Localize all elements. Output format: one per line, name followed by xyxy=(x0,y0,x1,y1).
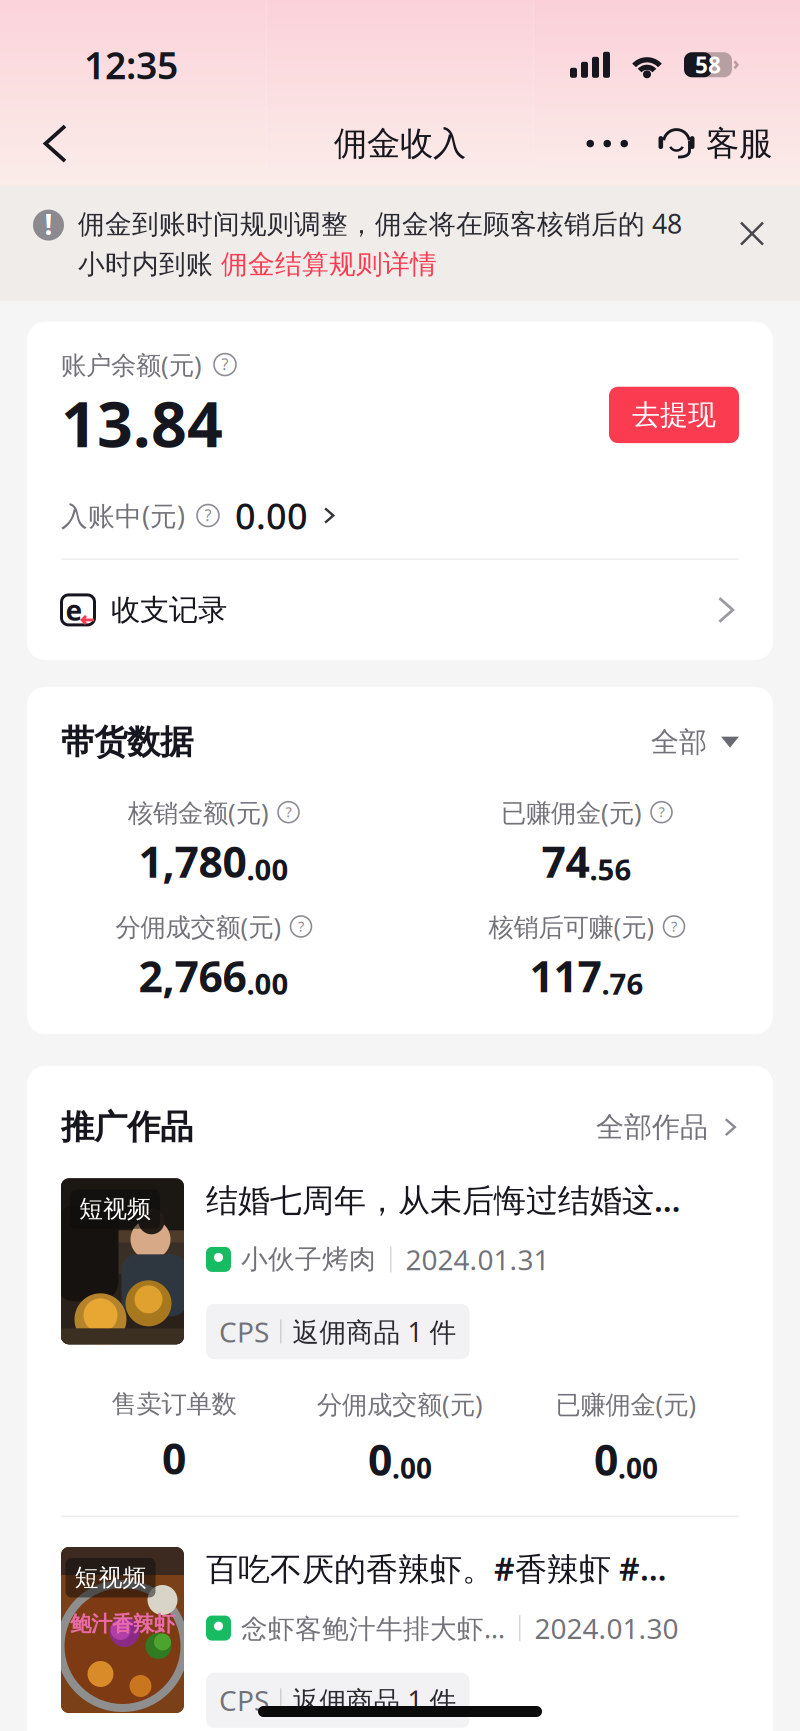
button[interactable]: 入账中(元) xyxy=(61,487,337,544)
staticText: 小伙子烤肉 xyxy=(241,1243,376,1276)
staticText: .76 xyxy=(601,964,643,1003)
staticText: ? xyxy=(671,916,677,936)
staticText: 分佣成交额(元) xyxy=(115,910,281,943)
staticText: ? xyxy=(298,916,304,936)
staticText: 1,780 xyxy=(138,833,246,890)
staticText: 百吃不厌的香辣虾。#香辣虾 #… xyxy=(206,1547,667,1589)
staticText: 佣金收入 xyxy=(334,123,466,164)
button[interactable]: 余额说明 xyxy=(214,354,236,376)
staticText: 鲍汁香辣虾 xyxy=(70,1611,175,1637)
button[interactable]: e xyxy=(27,560,773,660)
staticText: 核销金额(元) xyxy=(128,795,269,829)
staticText: 佣金结算规则详情 xyxy=(221,248,437,281)
staticText: ? xyxy=(221,353,228,375)
staticText: 2,766 xyxy=(138,947,246,1004)
staticText: 全部作品 xyxy=(596,1110,708,1144)
staticText: 全部 xyxy=(651,725,707,759)
staticText: 2024.01.31 xyxy=(405,1241,549,1278)
staticText: 账户余额(元) xyxy=(61,348,202,381)
staticText: 去提现 xyxy=(632,398,716,432)
staticText: 2024.01.30 xyxy=(534,1609,678,1647)
staticText: 已赚佣金(元) xyxy=(555,1387,696,1421)
button[interactable]: 去提现 xyxy=(609,387,739,443)
button[interactable]: 全部 xyxy=(651,717,739,767)
staticText: e xyxy=(65,591,82,628)
staticText: 客服 xyxy=(706,123,772,164)
staticText: 74 xyxy=(541,833,589,890)
button[interactable]: 客服 xyxy=(638,115,800,172)
staticText: .00 xyxy=(618,1449,658,1486)
button[interactable]: 关闭 xyxy=(716,202,788,266)
staticText: ? xyxy=(285,802,291,821)
staticText: CPS xyxy=(219,1682,269,1719)
staticText: 小时内到账 xyxy=(78,248,221,281)
staticText: 短视频 xyxy=(79,1194,151,1224)
staticText: 0.00 xyxy=(235,492,308,539)
staticText: .00 xyxy=(246,964,288,1003)
button[interactable]: 更多 xyxy=(558,118,638,169)
staticText: 短视频 xyxy=(74,1563,146,1592)
staticText: 58 xyxy=(695,50,721,80)
staticText: 推广作品 xyxy=(61,1107,193,1148)
staticText: .56 xyxy=(589,850,631,889)
staticText: 售卖订单数 xyxy=(111,1388,236,1420)
staticText: .00 xyxy=(392,1449,432,1486)
staticText: 0 xyxy=(368,1431,392,1487)
staticText: 念虾客鲍汁牛排大虾… xyxy=(241,1610,505,1646)
staticText: 入账中(元) xyxy=(61,498,185,533)
staticText: 带货数据 xyxy=(61,722,193,763)
staticText: 返佣商品 1 件 xyxy=(292,1683,456,1718)
button[interactable]: 短视频 xyxy=(27,1150,773,1487)
button[interactable]: 鲍汁香辣虾 xyxy=(27,1517,773,1731)
button[interactable]: 返回 xyxy=(0,112,91,176)
staticText: .00 xyxy=(246,850,288,889)
staticText: 结婚七周年，从未后悔过结婚这… xyxy=(206,1178,681,1221)
staticText: 0 xyxy=(594,1431,618,1487)
staticText: CPS xyxy=(219,1313,269,1350)
staticText: 12:35 xyxy=(84,40,178,90)
staticText: 13.84 xyxy=(61,381,223,465)
staticText: ! xyxy=(44,205,52,243)
staticText: 收支记录 xyxy=(111,592,227,628)
staticText: 核销后可赚(元) xyxy=(488,910,654,943)
staticText: 分佣成交额(元) xyxy=(317,1387,483,1421)
staticText: 佣金到账时间规则调整，佣金将在顾客核销后的 48 xyxy=(78,206,682,241)
staticText: ? xyxy=(204,504,211,526)
staticText: 117 xyxy=(529,947,601,1004)
staticText: 返佣商品 1 件 xyxy=(292,1314,456,1349)
button[interactable]: 全部作品 xyxy=(596,1104,739,1150)
staticText: 0 xyxy=(162,1430,186,1486)
staticText: ? xyxy=(658,802,664,821)
staticText: 已赚佣金(元) xyxy=(501,795,642,829)
